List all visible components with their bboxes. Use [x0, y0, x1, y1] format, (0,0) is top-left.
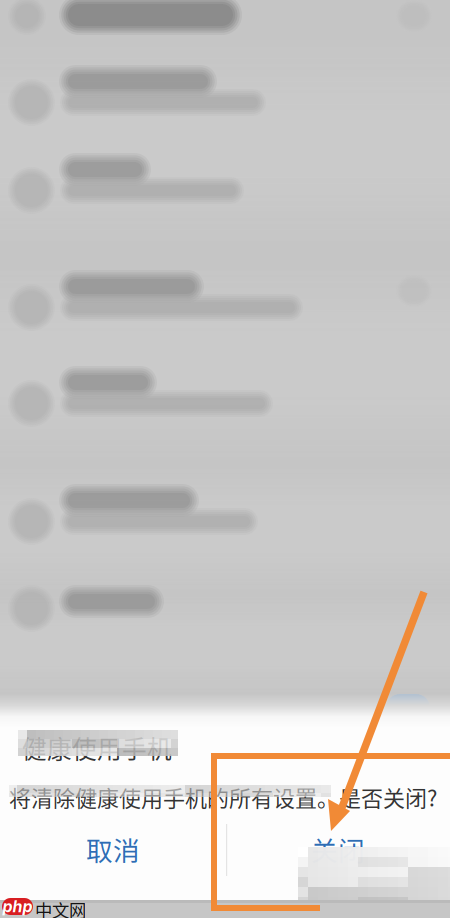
staticText: 中文网 [35, 897, 86, 918]
button[interactable]: 取消 [0, 818, 226, 880]
staticText: 将清除健康使用手机的所有设置。是否关闭? [9, 781, 437, 813]
staticText: 取消 [86, 830, 140, 868]
button[interactable]: 关闭 [226, 818, 450, 880]
staticText: php [2, 897, 32, 916]
staticText: 健康使用手机 [22, 730, 172, 766]
staticText: 关闭 [311, 830, 365, 868]
